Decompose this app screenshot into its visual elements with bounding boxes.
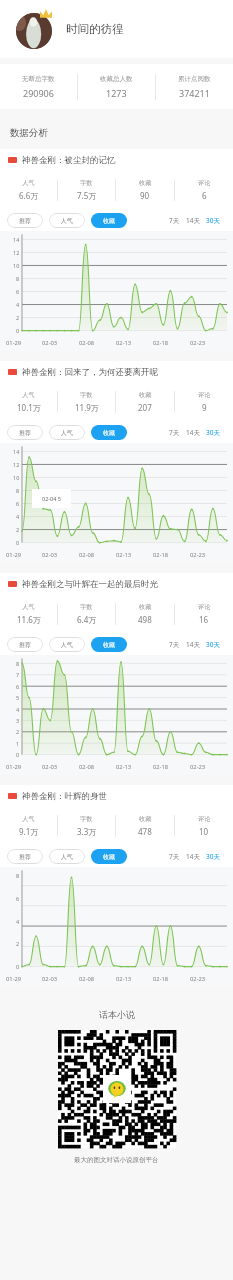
button[interactable]: 推荐 xyxy=(7,849,43,864)
button[interactable]: 30天 xyxy=(206,640,220,649)
button[interactable]: 推荐 xyxy=(7,425,43,440)
staticText: 02-23 xyxy=(190,551,227,559)
button[interactable]: 30天 xyxy=(206,852,220,861)
staticText: 收藏总人数 xyxy=(100,75,133,83)
button[interactable]: 人气 xyxy=(0,391,57,413)
button[interactable]: 30天 xyxy=(206,216,220,225)
button[interactable]: 14天 xyxy=(186,852,200,861)
button[interactable]: 推荐 xyxy=(7,213,43,228)
staticText: 收藏 xyxy=(139,603,152,611)
staticText: 4 xyxy=(16,301,20,308)
staticText: 时间的彷徨 xyxy=(66,22,124,36)
button[interactable]: 神兽金刚：叶辉的身世 xyxy=(0,785,233,807)
button[interactable]: 7天 xyxy=(169,852,180,861)
staticText: 2 xyxy=(16,526,20,533)
button[interactable]: 收藏 xyxy=(116,815,174,837)
button[interactable]: 14天 xyxy=(186,640,200,649)
button[interactable]: 7天 xyxy=(169,640,180,649)
staticText: 收藏 xyxy=(139,179,152,187)
button[interactable]: 人气 xyxy=(0,179,57,201)
staticText: 02-18 xyxy=(153,339,190,347)
button[interactable]: 评论 xyxy=(175,815,233,837)
button[interactable]: 神兽金刚：被尘封的记忆 xyxy=(0,149,233,171)
button[interactable]: 累计点阅数 xyxy=(156,75,233,99)
staticText: 2 xyxy=(16,940,20,947)
staticText: 01-29 xyxy=(6,551,42,559)
staticText: 02-08 xyxy=(79,339,116,347)
staticText: 2 xyxy=(16,314,20,321)
button[interactable]: 人气 xyxy=(0,815,57,837)
button[interactable]: 收藏 xyxy=(116,391,174,413)
other: QR code xyxy=(58,1030,176,1148)
staticText: 12 xyxy=(13,249,20,256)
staticText: 话本小说 xyxy=(99,1009,135,1020)
staticText: 推荐 xyxy=(19,641,31,649)
staticText: 无断总字数 xyxy=(22,75,55,83)
staticText: 人气 xyxy=(22,815,35,823)
button[interactable]: 人气 xyxy=(49,849,85,864)
staticText: 神兽金刚之与叶辉在一起的最后时光 xyxy=(22,579,158,590)
button[interactable]: 人气 xyxy=(49,637,85,652)
staticText: 评论 xyxy=(198,179,211,187)
button[interactable]: 7天 xyxy=(169,428,180,437)
button[interactable]: 人气 xyxy=(49,425,85,440)
button[interactable]: 收藏 xyxy=(91,637,127,652)
button[interactable]: 人气 xyxy=(49,213,85,228)
button[interactable]: 人气 xyxy=(0,603,57,625)
button[interactable]: 14天 xyxy=(186,428,200,437)
button[interactable]: 推荐 xyxy=(7,637,43,652)
staticText: 字数 xyxy=(80,815,93,823)
staticText: 6 xyxy=(16,683,20,690)
staticText: 02-03 xyxy=(42,551,79,559)
staticText: 9 xyxy=(202,402,207,413)
staticText: 1 xyxy=(16,740,20,747)
button[interactable]: Avatar xyxy=(0,0,233,58)
staticText: 收藏 xyxy=(139,815,152,823)
button[interactable]: 7天 xyxy=(169,216,180,225)
staticText: 神兽金刚：叶辉的身世 xyxy=(22,791,107,802)
button[interactable]: 14天 xyxy=(186,216,200,225)
staticText: 02-18 xyxy=(153,763,190,771)
button[interactable]: 评论 xyxy=(175,391,233,413)
staticText: 人气 xyxy=(22,603,35,611)
button[interactable]: 收藏 xyxy=(91,849,127,864)
button[interactable]: 字数 xyxy=(58,603,115,625)
staticText: 02-08 xyxy=(79,763,116,771)
staticText: 02-04 5 xyxy=(42,495,61,502)
staticText: 4 xyxy=(16,918,20,925)
button[interactable]: 字数 xyxy=(58,391,115,413)
staticText: 6 xyxy=(16,500,20,507)
staticText: 6 xyxy=(16,288,20,295)
staticText: 收藏 xyxy=(103,429,115,437)
staticText: 6.4万 xyxy=(77,614,97,625)
staticText: 字数 xyxy=(80,391,93,399)
button[interactable]: 收藏 xyxy=(116,603,174,625)
button[interactable]: 神兽金刚之与叶辉在一起的最后时光 xyxy=(0,573,233,595)
staticText: 01-29 xyxy=(6,763,42,771)
button[interactable]: 收藏 xyxy=(116,179,174,201)
staticText: 02-13 xyxy=(116,551,153,559)
staticText: 收藏 xyxy=(103,641,115,649)
button[interactable]: 收藏 xyxy=(91,425,127,440)
button[interactable]: 评论 xyxy=(175,603,233,625)
button[interactable]: 收藏 xyxy=(91,213,127,228)
staticText: 10 xyxy=(13,474,20,481)
button[interactable]: 神兽金刚：回来了，为何还要离开呢 xyxy=(0,361,233,383)
staticText: 人气 xyxy=(61,429,73,437)
staticText: 10.1万 xyxy=(17,402,41,413)
staticText: 6 xyxy=(202,190,207,201)
button[interactable]: 30天 xyxy=(206,428,220,437)
button[interactable]: 无断总字数 xyxy=(0,75,77,99)
staticText: 人气 xyxy=(22,179,35,187)
staticText: 02-18 xyxy=(153,975,190,983)
staticText: 推荐 xyxy=(19,429,31,437)
staticText: 6.6万 xyxy=(19,190,39,201)
button[interactable]: 评论 xyxy=(175,179,233,201)
button[interactable]: 字数 xyxy=(58,815,115,837)
button[interactable]: 字数 xyxy=(58,179,115,201)
staticText: 02-08 xyxy=(79,551,116,559)
staticText: 02-13 xyxy=(116,975,153,983)
button[interactable]: 收藏总人数 xyxy=(78,75,155,99)
staticText: 1273 xyxy=(106,87,127,99)
staticText: 评论 xyxy=(198,391,211,399)
